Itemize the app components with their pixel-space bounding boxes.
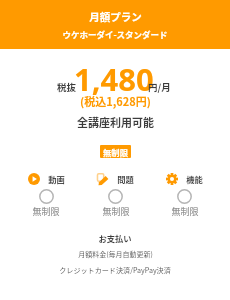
other: Video [28, 173, 40, 185]
staticText: 動画 [48, 173, 65, 185]
button[interactable]: Questions [81, 173, 150, 218]
button[interactable]: 月額プラン [0, 0, 230, 49]
button[interactable]: 無制限 [100, 145, 131, 158]
staticText: 無制限 [103, 146, 128, 158]
other: Questions [97, 173, 109, 185]
button[interactable]: Video [11, 173, 81, 218]
other: Features [166, 173, 178, 185]
staticText: 円/月 [148, 80, 171, 94]
staticText: 月額料金(毎月自動更新) [78, 249, 153, 259]
staticText: 無制限 [32, 205, 60, 218]
staticText: 月額プラン [89, 9, 142, 24]
staticText: クレジットカード決済/PayPay決済 [59, 265, 171, 275]
staticText: 機能 [186, 173, 203, 185]
staticText: 無制限 [171, 205, 199, 218]
staticText: (税込1,628円) [80, 93, 151, 109]
staticText: 全講座利用可能 [77, 114, 154, 130]
staticText: 税抜 [57, 80, 77, 94]
staticText: 無制限 [102, 205, 130, 218]
staticText: お支払い [98, 232, 132, 244]
button[interactable]: Features [150, 173, 219, 218]
staticText: ウケホーダイ-スタンダード [62, 28, 168, 40]
staticText: 1,480 [74, 58, 154, 100]
staticText: 問題 [117, 173, 134, 185]
